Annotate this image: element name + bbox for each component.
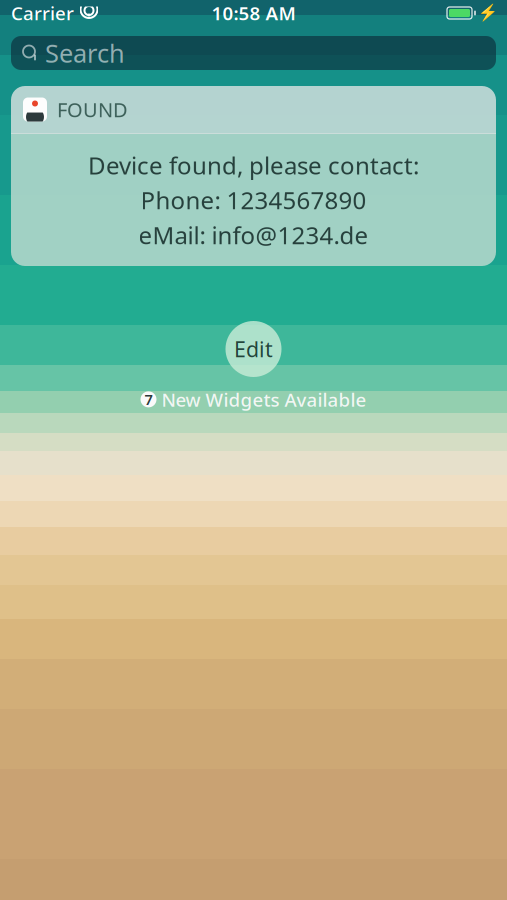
button[interactable]: FOUND bbox=[11, 86, 496, 133]
staticText: eMail: info@1234.de bbox=[138, 219, 368, 251]
button[interactable]: Edit bbox=[225, 321, 281, 377]
staticText: New Widgets Available bbox=[161, 387, 366, 412]
button[interactable]: 7 bbox=[136, 384, 370, 415]
staticText: 7 bbox=[144, 390, 152, 409]
staticText: Carrier bbox=[11, 1, 74, 25]
staticText: ⚡ bbox=[478, 4, 498, 22]
staticText: Edit bbox=[234, 335, 273, 363]
button[interactable]: Search bbox=[11, 36, 496, 70]
staticText: FOUND bbox=[57, 96, 128, 123]
staticText: 10:58 AM bbox=[211, 1, 295, 25]
staticText: Phone: 1234567890 bbox=[140, 184, 366, 216]
staticText: Search bbox=[45, 36, 125, 70]
staticText: Device found, please contact: bbox=[88, 149, 419, 181]
